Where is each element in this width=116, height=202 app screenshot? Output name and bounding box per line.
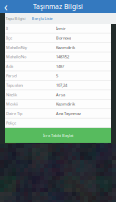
staticText: İl: [6, 26, 8, 31]
staticText: İzmir: [56, 26, 66, 31]
staticText: Kazımdirik: [56, 45, 75, 50]
staticText: 5: [56, 73, 58, 78]
staticText: Kazımdirik: [56, 101, 75, 107]
staticText: Tapu alanı: [6, 82, 23, 88]
staticText: ‹: [4, 0, 8, 14]
staticText: İlçe: [6, 35, 12, 40]
staticText: Bornova: [56, 35, 71, 40]
button[interactable]: İcra Takibi Başlat: [5, 128, 111, 143]
staticText: Mahalle/Köy: [6, 45, 27, 50]
staticText: Mahalle/No: [6, 54, 26, 59]
staticText: Parsel: [6, 73, 17, 78]
staticText: İcra Takibi Başlat: [43, 133, 73, 138]
button[interactable]: Borçlu Liste: [31, 13, 53, 24]
staticText: 1487: [56, 64, 64, 69]
staticText: Borçlu Liste: [31, 16, 52, 21]
staticText: Poliçe: [6, 120, 16, 126]
button[interactable]: Back: [0, 0, 12, 13]
staticText: Taşınmaz Bilgisi: [33, 2, 83, 11]
staticText: Ada: [6, 64, 13, 69]
button[interactable]: Tapu Bilgisi: [5, 13, 26, 24]
staticText: 1487/52: [56, 54, 69, 59]
staticText: 107,24: [56, 82, 67, 88]
staticText: Mevkii: [6, 101, 18, 107]
staticText: Arsa: [56, 92, 65, 97]
staticText: Tapu Bilgisi: [5, 16, 25, 21]
staticText: Daire Tip: [6, 111, 22, 116]
staticText: Nitelik: [6, 92, 17, 97]
staticText: Ana Taşınmaz: [56, 111, 81, 116]
